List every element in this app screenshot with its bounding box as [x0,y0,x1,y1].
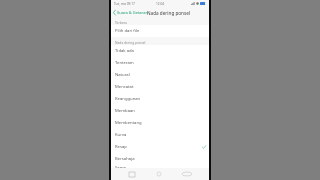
staticText: Membentang [115,120,142,126]
button[interactable]: Back [179,169,195,179]
button[interactable]: Sama [111,165,209,168]
staticText: Tenteram [115,60,134,66]
staticText: Bersahaja [115,156,135,162]
staticText: Nada dering ponsel [115,40,146,44]
staticText: Suara & Getaran [117,10,148,15]
staticText: Tue, ma 09:17 [114,2,135,6]
button[interactable]: Pilih dari file [111,25,209,37]
button[interactable]: Kurva [111,129,209,141]
staticText: Sama [115,165,126,168]
button[interactable]: Home [152,169,166,179]
button[interactable]: Mencatat [111,81,209,93]
staticText: Terbaru [115,20,128,24]
staticText: Nada dering ponsel [147,10,191,16]
button[interactable]: Suara & Getaran [111,7,150,18]
button[interactable]: Tidak ada [111,45,209,57]
staticText: Pilih dari file [115,28,140,34]
button[interactable]: Bersahaja [111,153,209,165]
button[interactable]: Membentang [111,117,209,129]
staticText: 12:04 [156,2,165,6]
button[interactable]: Tenteram [111,57,209,69]
button[interactable]: Natural [111,69,209,81]
button[interactable]: Resap [111,141,209,153]
button[interactable]: Recents [125,169,139,179]
staticText: Resap [115,144,127,150]
button[interactable]: Keanggunan [111,93,209,105]
button[interactable]: Membaan [111,105,209,117]
staticText: Keanggunan [115,96,141,102]
staticText: Natural [115,72,130,78]
staticText: Membaan [115,108,135,114]
staticText: Tidak ada [115,48,134,54]
staticText: Kurva [115,132,127,138]
staticText: Mencatat [115,84,134,90]
